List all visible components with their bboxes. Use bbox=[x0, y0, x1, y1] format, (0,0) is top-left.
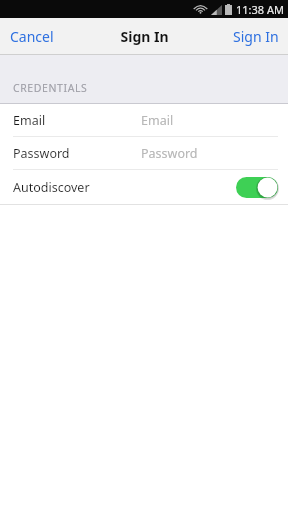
staticText: Password bbox=[141, 145, 198, 162]
button[interactable]: Autodiscover bbox=[0, 170, 288, 204]
button[interactable]: Cancel bbox=[0, 20, 64, 53]
staticText: Email bbox=[13, 112, 46, 129]
staticText: Sign In bbox=[233, 27, 279, 46]
staticText: Email bbox=[141, 112, 174, 129]
staticText: Sign In bbox=[120, 27, 169, 46]
staticText: Cancel bbox=[10, 27, 54, 46]
button[interactable]: Sign In bbox=[224, 20, 288, 53]
staticText: 11:38 AM bbox=[236, 2, 284, 17]
staticText: CREDENTIALS bbox=[13, 81, 88, 95]
button[interactable]: Password bbox=[0, 137, 288, 169]
button[interactable]: Autodiscover toggle bbox=[236, 177, 278, 198]
staticText: Password bbox=[13, 145, 70, 162]
staticText: Autodiscover bbox=[13, 179, 90, 196]
button[interactable]: Email bbox=[0, 104, 288, 136]
